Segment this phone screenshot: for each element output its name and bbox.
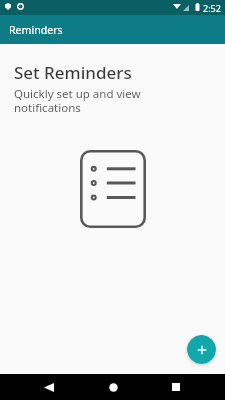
button[interactable]: Back [35,374,63,400]
button[interactable]: Recents [162,374,190,400]
staticText: 2:52 [203,2,221,14]
staticText: Quickly set up and view notifications [14,86,141,115]
staticText: Set Reminders [14,61,132,84]
staticText: Reminders [9,23,63,37]
button[interactable]: Home [99,374,127,400]
button[interactable]: Add reminder [187,335,216,364]
